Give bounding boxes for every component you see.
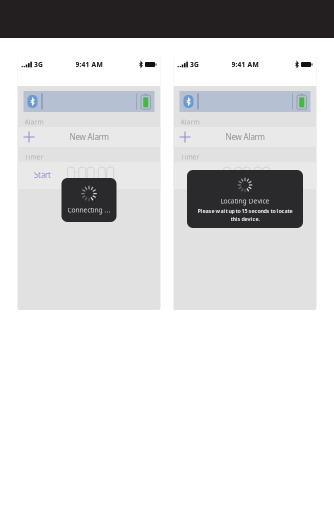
staticText: New Alarm [69, 132, 108, 142]
staticText: 9:41 AM [231, 60, 258, 69]
staticText: Locating Device [220, 196, 269, 205]
staticText: Start [190, 170, 207, 180]
staticText: Timer [180, 153, 199, 161]
button[interactable]: New Alarm [173, 127, 316, 147]
staticText: Alarm [180, 118, 199, 126]
staticText: 3G [32, 60, 43, 69]
staticText: New Alarm [225, 132, 264, 142]
staticText: this device. [230, 215, 259, 222]
staticText: Start [34, 170, 51, 180]
staticText: 3G [188, 60, 199, 69]
button[interactable]: Start [31, 169, 53, 181]
staticText: Please wait up to 15 seconds to locate [197, 207, 292, 214]
button[interactable]: New Alarm [17, 127, 160, 147]
button[interactable]: Start [187, 169, 209, 181]
staticText: Timer [24, 153, 43, 161]
staticText: Connecting ... [67, 206, 110, 214]
staticText: Alarm [24, 118, 43, 126]
staticText: 9:41 AM [75, 60, 102, 69]
